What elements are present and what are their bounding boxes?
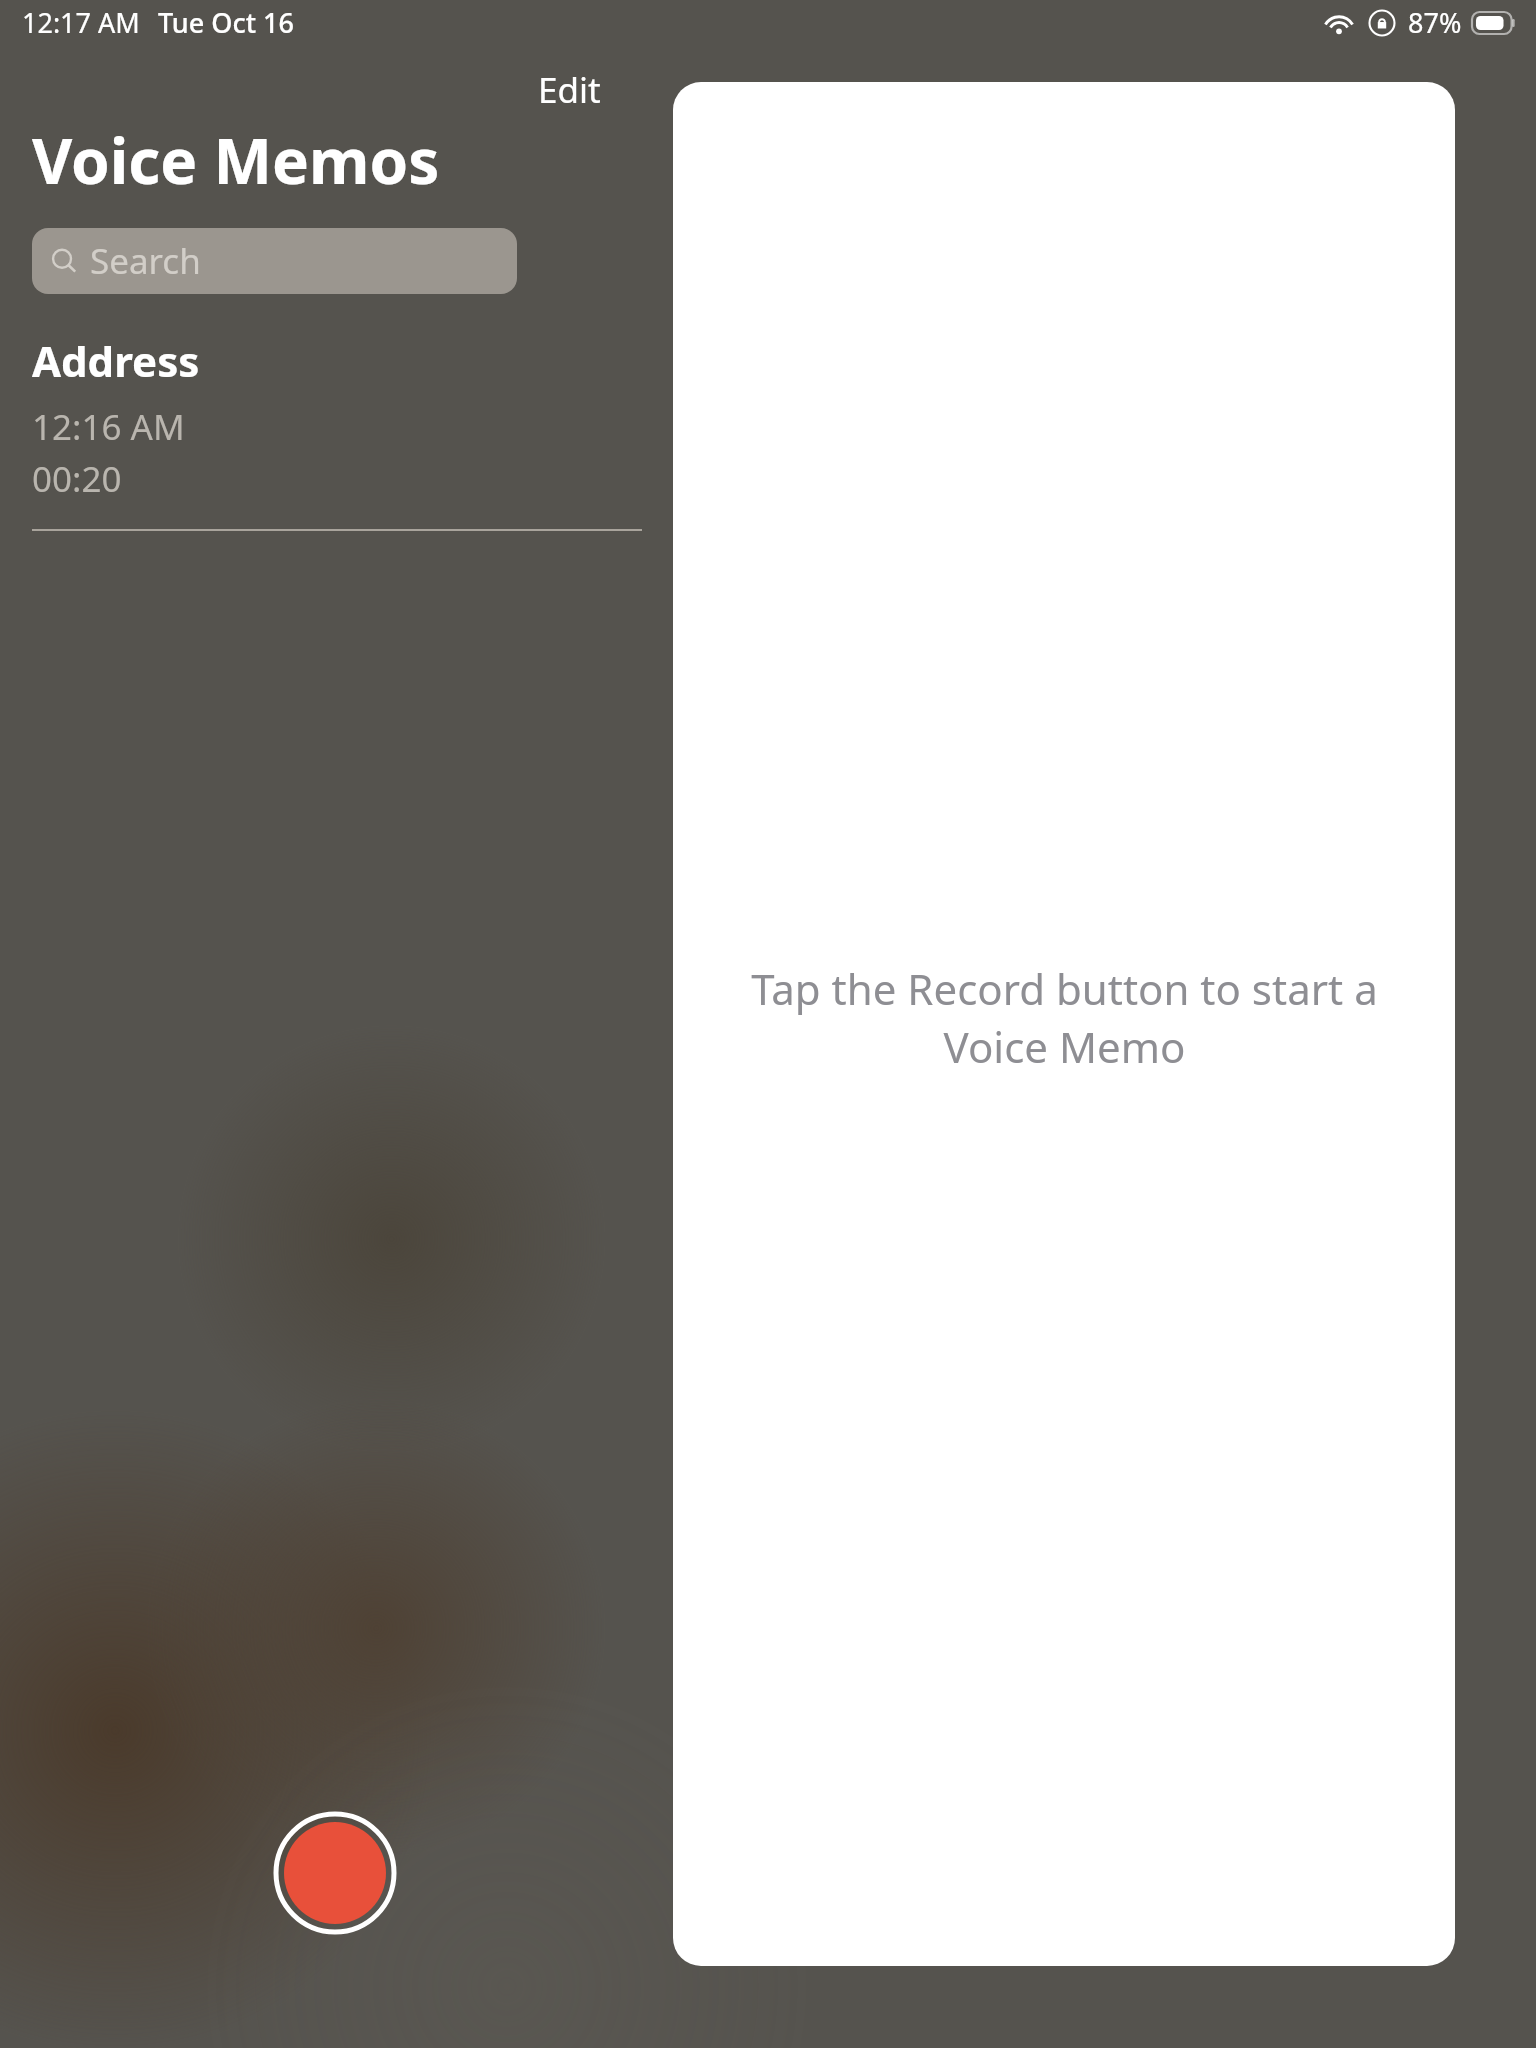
staticText: Edit [538,66,601,114]
staticText: Tap the Record button to start a Voice M… [751,960,1378,1075]
staticText: Address [32,332,200,389]
staticText: 87% [1408,4,1462,41]
staticText: Voice Memos [32,118,440,202]
button[interactable]: Search [32,228,517,294]
button[interactable]: Address [0,326,660,513]
button[interactable]: Record [273,1811,397,1935]
staticText: Tue Oct 16 [158,4,294,41]
staticText: Search [90,237,201,285]
staticText: 12:17 AM [22,4,140,41]
staticText: 00:20 [32,455,122,503]
button[interactable]: Edit [520,58,619,122]
staticText: 12:16 AM [32,403,185,451]
